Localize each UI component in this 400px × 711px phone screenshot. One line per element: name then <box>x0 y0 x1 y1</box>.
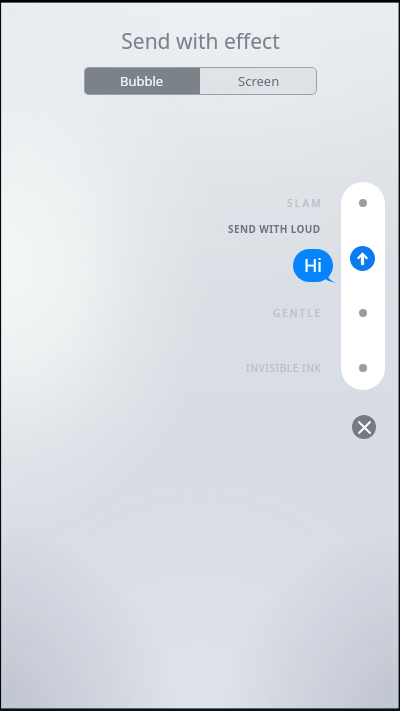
staticText: SLAM <box>287 196 323 210</box>
button[interactable]: GENTLE <box>0 302 400 324</box>
button[interactable]: Effect option <box>359 199 367 207</box>
button[interactable]: SLAM <box>0 192 400 214</box>
button[interactable]: Effect option <box>359 364 367 372</box>
staticText: Send with effect <box>121 27 280 56</box>
button[interactable]: Effect option <box>359 309 367 317</box>
staticText: Screen <box>238 72 280 90</box>
button[interactable]: INVISIBLE INK <box>0 357 400 379</box>
button[interactable]: Bubble <box>84 67 200 95</box>
button[interactable]: SEND WITH LOUD <box>0 218 400 240</box>
button[interactable]: Send <box>350 246 375 271</box>
staticText: SEND WITH LOUD <box>228 222 321 236</box>
button[interactable]: Close <box>352 415 376 439</box>
staticText: Hi <box>304 253 322 278</box>
button[interactable]: Screen <box>200 67 317 95</box>
staticText: GENTLE <box>273 306 323 320</box>
staticText: Bubble <box>120 72 164 90</box>
staticText: INVISIBLE INK <box>246 361 322 375</box>
